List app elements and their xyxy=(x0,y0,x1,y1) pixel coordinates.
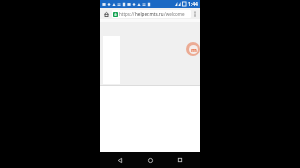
button[interactable]: Back xyxy=(110,152,130,168)
staticText: /welcome xyxy=(164,11,185,17)
button[interactable]: Home xyxy=(140,152,160,168)
staticText: helper.mts.ru xyxy=(135,11,164,17)
button[interactable]: Home xyxy=(102,10,110,18)
button[interactable]: MTS logo xyxy=(186,42,200,56)
button[interactable]: Recent apps xyxy=(170,152,190,168)
button[interactable]: https:// xyxy=(112,10,191,18)
staticText: m xyxy=(191,46,197,54)
staticText: https:// xyxy=(119,11,135,17)
button[interactable]: More options xyxy=(192,9,198,18)
staticText: 1:44 xyxy=(188,1,198,8)
